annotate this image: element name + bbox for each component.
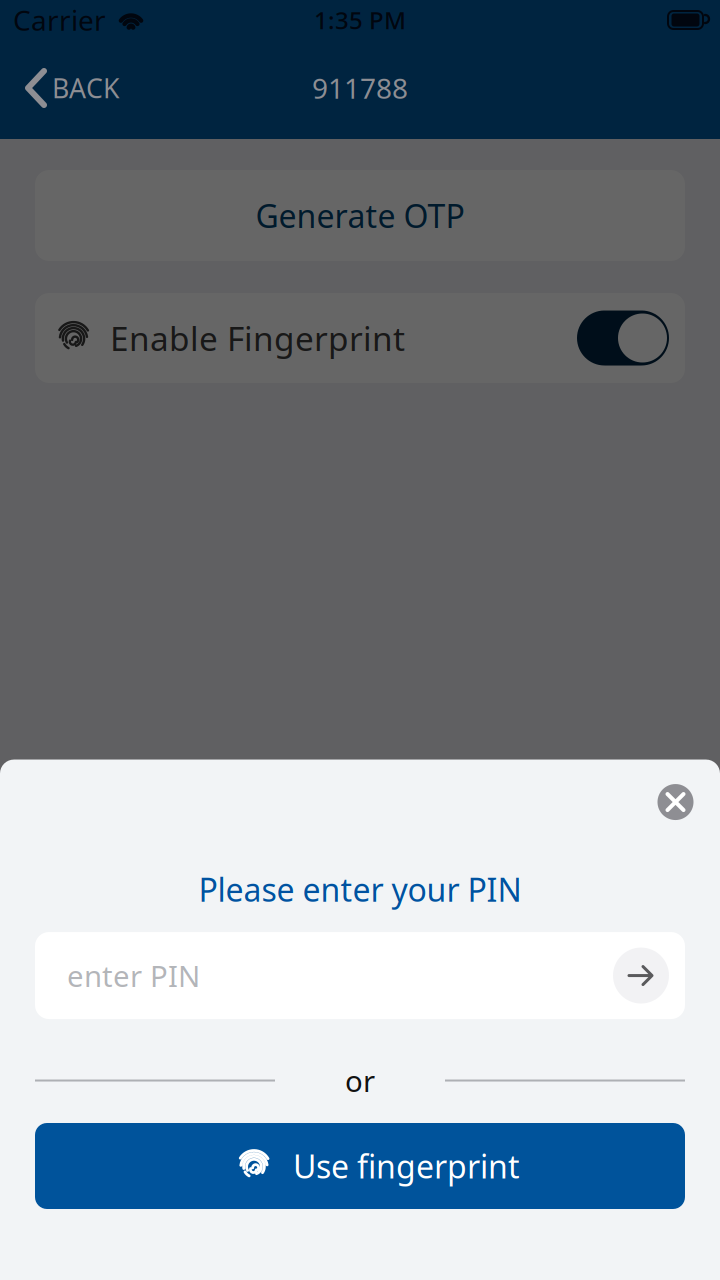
staticText: or [345, 1061, 375, 1100]
button[interactable]: Generate OTP [35, 170, 685, 261]
staticText: enter PIN [67, 956, 200, 995]
staticText: Use fingerprint [293, 1145, 520, 1187]
button[interactable]: Enable Fingerprint [35, 293, 685, 383]
staticText: Enable Fingerprint [110, 316, 405, 360]
staticText: Generate OTP [255, 194, 464, 237]
staticText: 1:35 PM [314, 4, 406, 36]
staticText: Please enter your PIN [198, 868, 521, 911]
staticText: 911788 [312, 69, 408, 107]
button[interactable]: BACK [0, 52, 138, 124]
staticText: Carrier [13, 1, 106, 39]
button[interactable]: Submit PIN [613, 947, 669, 1003]
button[interactable]: Use fingerprint [35, 1123, 685, 1209]
button[interactable]: Close [649, 776, 702, 829]
staticText: BACK [52, 70, 120, 106]
